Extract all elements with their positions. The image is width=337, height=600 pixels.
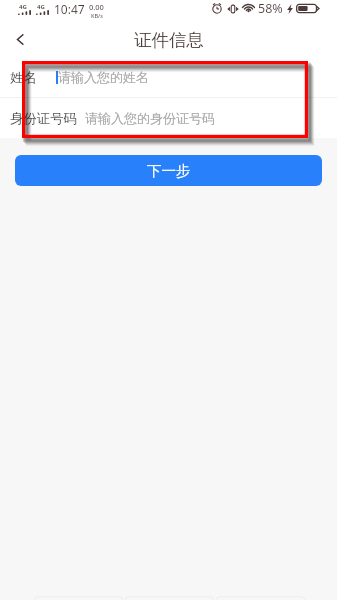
staticText: 58% xyxy=(258,0,283,17)
button[interactable]: 下一步 xyxy=(15,155,322,186)
staticText: 4G xyxy=(37,3,45,11)
staticText: KB/s xyxy=(91,12,103,19)
staticText: 请输入您的姓名 xyxy=(58,69,149,85)
button[interactable]: Back xyxy=(0,22,40,57)
staticText: 下一步 xyxy=(147,162,191,180)
staticText: 姓名 xyxy=(10,69,37,86)
staticText: 0.00 xyxy=(89,2,104,12)
button[interactable]: 身份证号码 xyxy=(0,98,337,138)
staticText: 4G xyxy=(19,3,27,11)
staticText: 10:47 xyxy=(54,1,85,17)
staticText: 证件信息 xyxy=(134,29,204,51)
staticText: 请输入您的身份证号码 xyxy=(85,110,215,126)
staticText: 身份证号码 xyxy=(10,110,77,127)
button[interactable]: 姓名 xyxy=(0,57,337,97)
